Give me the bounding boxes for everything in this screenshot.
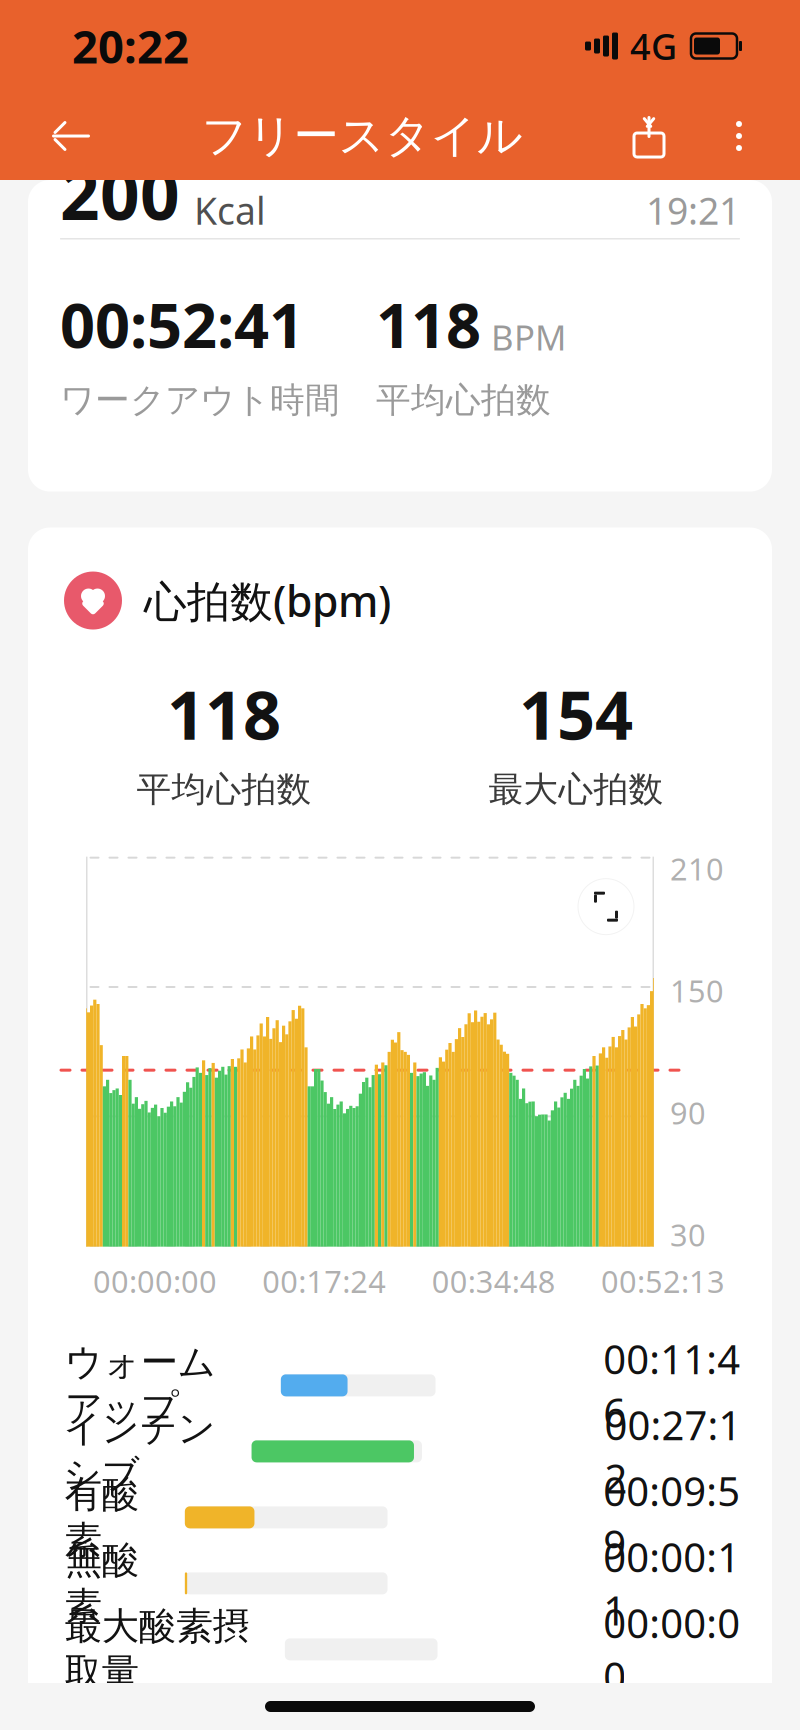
staticText: 有酸素 [65, 1471, 139, 1563]
staticText: 平均心拍数 [376, 379, 551, 421]
staticText: 00:17:24 [262, 1261, 386, 1301]
staticText: フリースタイル [201, 108, 522, 164]
button[interactable]: 戻る [36, 101, 106, 171]
staticText: 118 [167, 669, 281, 758]
staticText: 00:00:00 [93, 1261, 217, 1301]
staticText: 00:00:11 [603, 1530, 740, 1636]
staticText: 00:52:13 [601, 1261, 725, 1301]
staticText: 30 [670, 1214, 706, 1255]
staticText: 心拍数(bpm) [144, 572, 391, 629]
button[interactable]: その他のオプション [716, 101, 762, 171]
staticText: 210 [670, 848, 724, 889]
staticText: 00:34:48 [432, 1261, 556, 1301]
staticText: BPM [491, 314, 566, 360]
staticText: ワークアウト時間 [60, 379, 340, 421]
staticText: 00:11:46 [603, 1332, 740, 1438]
staticText: Kcal [194, 185, 266, 235]
staticText: 154 [519, 669, 633, 758]
staticText: 90 [670, 1092, 706, 1133]
staticText: 平均心拍数 [136, 768, 311, 811]
staticText: 150 [670, 970, 724, 1011]
staticText: 200 [60, 147, 180, 239]
staticText: ウォームアップ [65, 1339, 216, 1431]
staticText: 19:21 [646, 185, 740, 235]
staticText: 最大心拍数 [488, 768, 663, 811]
staticText: 00:52:41 [60, 283, 304, 365]
staticText: 20:22 [72, 16, 189, 76]
staticText: 4G [630, 22, 677, 70]
staticText: 118 [376, 283, 481, 365]
staticText: 00:09:59 [603, 1464, 740, 1570]
staticText: 無酸素 [65, 1537, 139, 1629]
staticText: 00:00:00 [603, 1596, 740, 1702]
staticText: インテンシブ [64, 1405, 216, 1497]
staticText: 最大酸素摂取量 [65, 1603, 250, 1695]
button[interactable]: 共有 [618, 101, 680, 171]
button[interactable]: グラフを拡大 [578, 879, 634, 935]
staticText: 00:27:12 [604, 1398, 741, 1504]
